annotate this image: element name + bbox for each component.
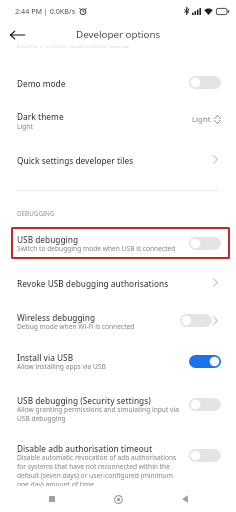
staticText: Install via USB: [17, 352, 74, 363]
button[interactable]: [11, 227, 230, 259]
button[interactable]: Back: [170, 486, 200, 512]
staticText: 2:44 PM | 0.0KB/s: [15, 6, 76, 16]
button[interactable]: Home: [103, 486, 133, 512]
staticText: Allow installing apps via USB: [17, 362, 106, 371]
button[interactable]: [0, 300, 236, 334]
staticText: Developer options: [76, 28, 161, 41]
button[interactable]: Recent apps: [37, 486, 67, 512]
staticText: USB debugging: [17, 234, 79, 245]
button[interactable]: [0, 432, 236, 484]
button[interactable]: Back: [6, 24, 28, 46]
staticText: Debug mode when Wi-Fi is connected: [17, 322, 135, 331]
staticText: Switch to debugging mode when USB is con…: [17, 244, 176, 253]
staticText: Light: [17, 122, 33, 131]
button[interactable]: [0, 341, 236, 375]
staticText: Allow granting permissions and simulatin…: [17, 405, 180, 423]
button[interactable]: [0, 66, 236, 93]
staticText: Disable adb authorisation timeout: [17, 443, 153, 454]
staticText: Wireless debugging: [17, 312, 96, 323]
button[interactable]: [0, 383, 236, 427]
staticText: Revoke USB debugging authorisations: [17, 278, 169, 289]
staticText: Dark theme: [17, 111, 64, 122]
button[interactable]: [0, 265, 236, 293]
staticText: USB debugging (Security settings): [17, 395, 151, 406]
staticText: Enable a system-level system image: [17, 44, 129, 48]
staticText: Quick settings developer tiles: [17, 155, 134, 166]
button[interactable]: [0, 100, 236, 135]
staticText: Disable automatic revocation of adb auth…: [17, 453, 180, 489]
staticText: Demo mode: [17, 78, 66, 89]
staticText: DEBUGGING: [17, 209, 55, 218]
button[interactable]: [0, 142, 236, 170]
staticText: Light: [192, 114, 211, 125]
